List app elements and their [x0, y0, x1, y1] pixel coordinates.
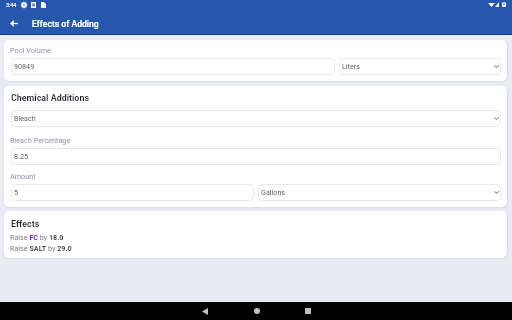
staticText: Liters	[342, 62, 360, 70]
staticText: Gallons	[261, 188, 286, 196]
button[interactable]: Home	[238, 302, 275, 320]
button[interactable]: 8.25	[11, 148, 501, 165]
staticText: Bleach	[14, 114, 36, 122]
staticText: Raise SALT by 29.0	[10, 244, 72, 252]
staticText: Raise FC by 18.0	[10, 233, 64, 241]
button[interactable]: Back	[186, 302, 223, 320]
staticText: Bleach Percentage	[10, 136, 71, 144]
button[interactable]: 90849	[11, 58, 335, 75]
button[interactable]: Liters	[339, 58, 501, 75]
staticText: Effects of Adding	[32, 19, 99, 29]
staticText: Chemical Additions	[11, 93, 89, 103]
staticText: Amount	[10, 172, 36, 180]
staticText: 5	[14, 188, 19, 196]
staticText: 8.25	[14, 152, 29, 160]
button[interactable]: Bleach	[11, 110, 501, 127]
button[interactable]: 5	[11, 184, 254, 201]
button[interactable]: Recent apps	[289, 302, 326, 320]
staticText: 3:44	[6, 2, 17, 8]
button[interactable]: Gallons	[258, 184, 501, 201]
staticText: Effects	[11, 219, 40, 229]
button[interactable]: Navigate up	[0, 16, 22, 34]
staticText: Pool Volume	[10, 46, 51, 54]
staticText: 90849	[14, 62, 35, 70]
